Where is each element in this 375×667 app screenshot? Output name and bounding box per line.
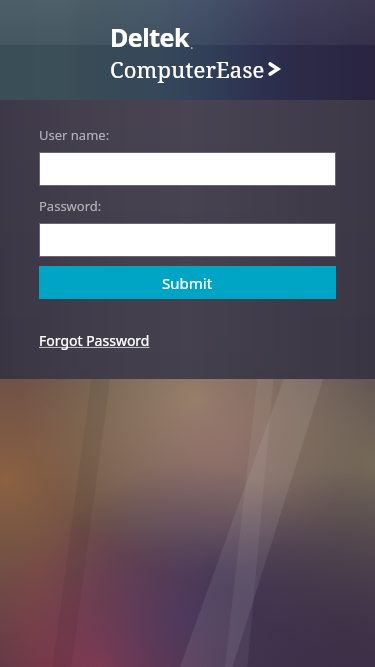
button[interactable]: Forgot Password [39,331,150,350]
button[interactable]: Submit [39,266,336,299]
staticText: Submit [162,273,213,293]
staticText: User name: [39,126,110,144]
staticText: Deltek [110,20,189,54]
staticText: ComputerEase [110,54,265,84]
staticText: . [190,35,194,53]
staticText: Password: [39,197,102,215]
staticText: Forgot Password [39,331,150,350]
